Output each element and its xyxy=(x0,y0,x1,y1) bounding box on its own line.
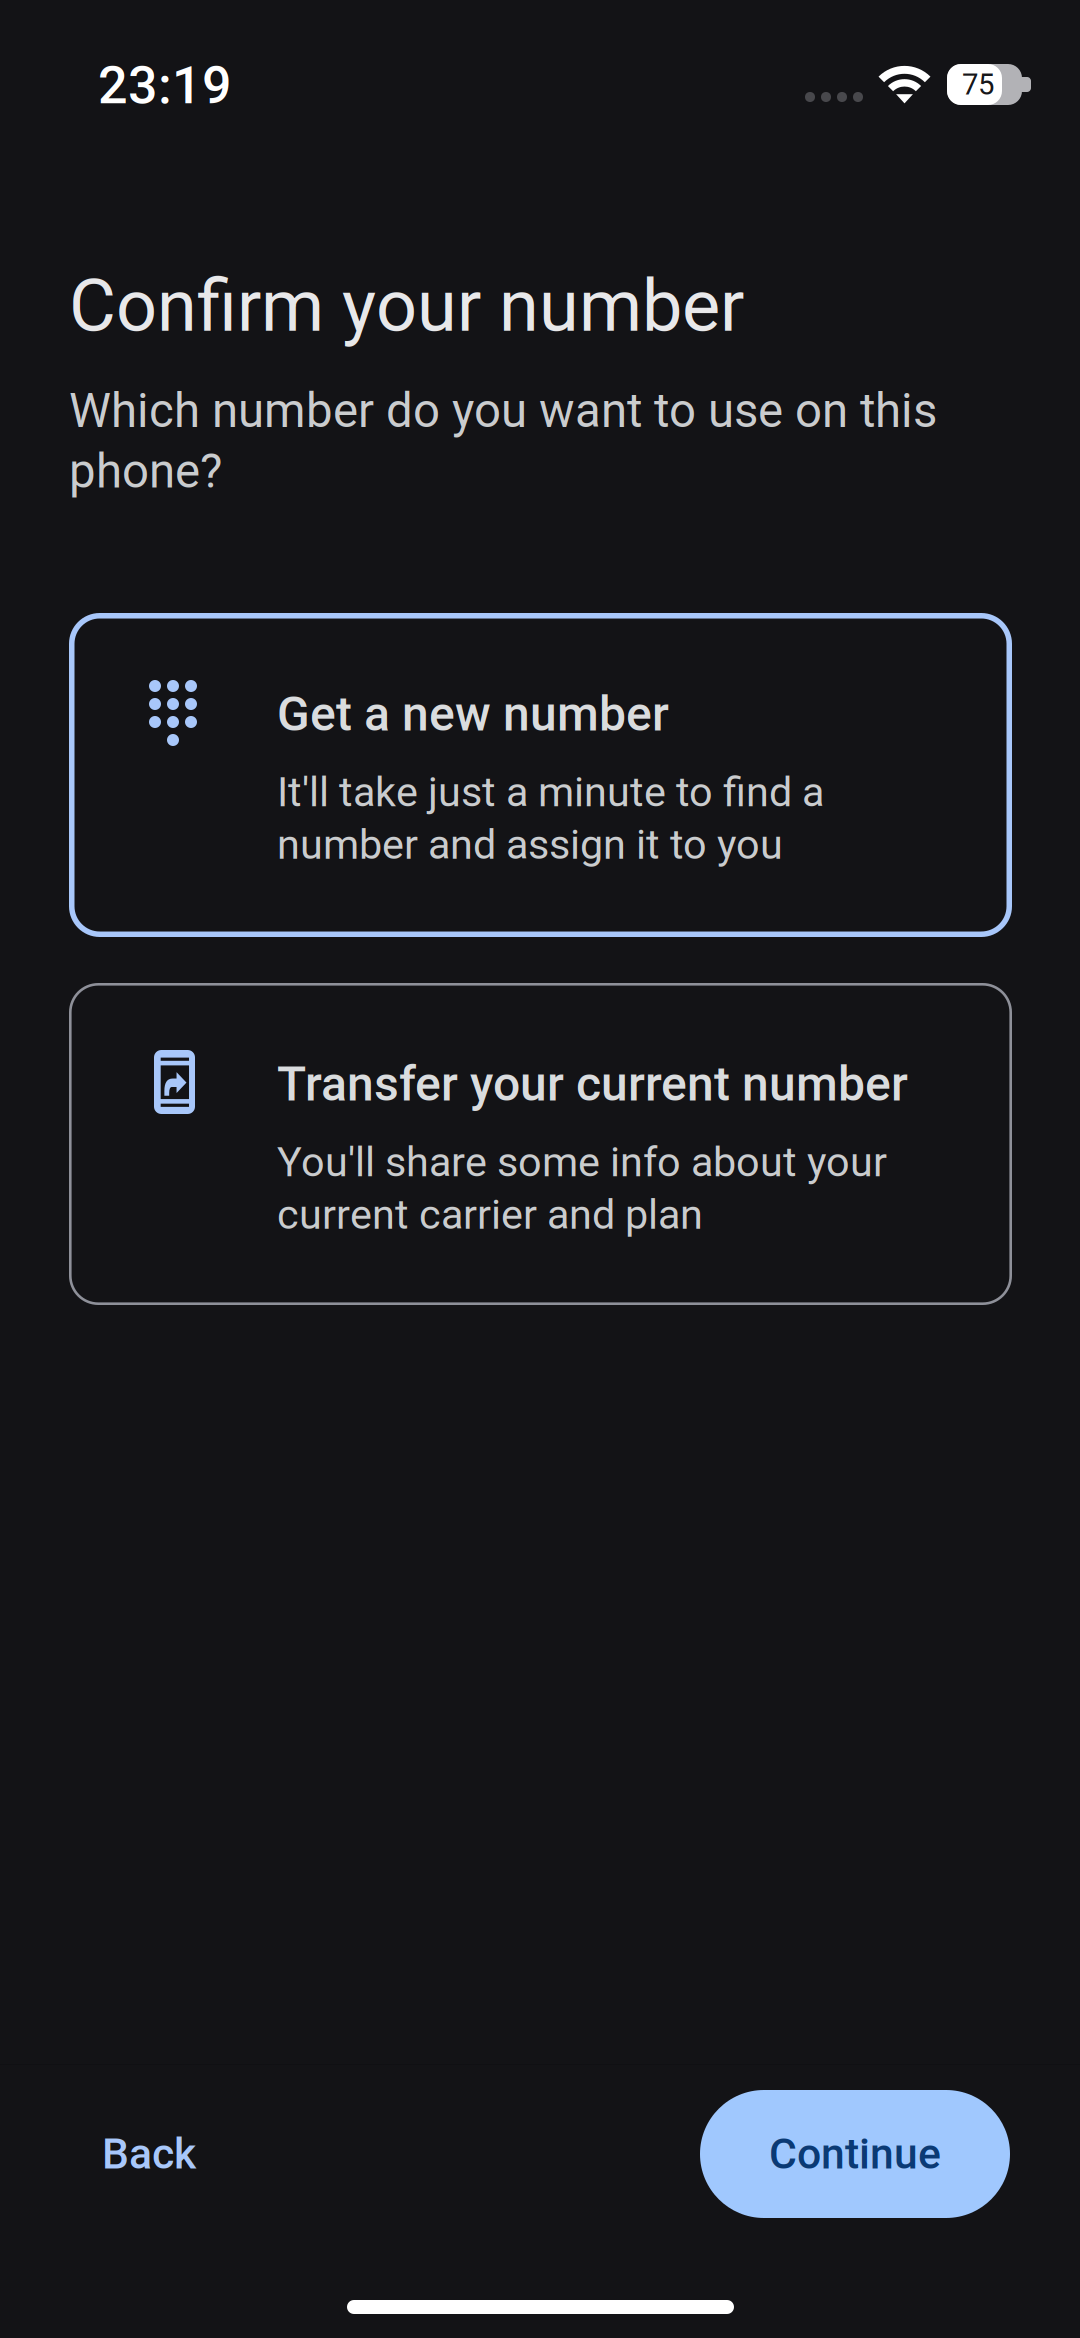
staticText: Which number do you want to use on this … xyxy=(69,383,937,499)
staticText: 23:19 xyxy=(98,55,232,116)
staticText: Get a new number xyxy=(277,686,669,742)
button[interactable]: Transfer your current number xyxy=(69,983,1012,1305)
button[interactable]: Continue xyxy=(700,2090,1010,2218)
staticText: 75 xyxy=(962,67,994,102)
staticText: Back xyxy=(102,2129,196,2179)
staticText: Confirm your number xyxy=(69,264,744,348)
staticText: Transfer your current number xyxy=(277,1056,908,1112)
button[interactable]: Get a new number xyxy=(69,613,1012,937)
staticText: Continue xyxy=(769,2129,941,2179)
staticText: It'll take just a minute to find a numbe… xyxy=(277,768,824,869)
staticText: You'll share some info about your curren… xyxy=(277,1138,887,1239)
button[interactable]: Back xyxy=(64,2090,234,2218)
